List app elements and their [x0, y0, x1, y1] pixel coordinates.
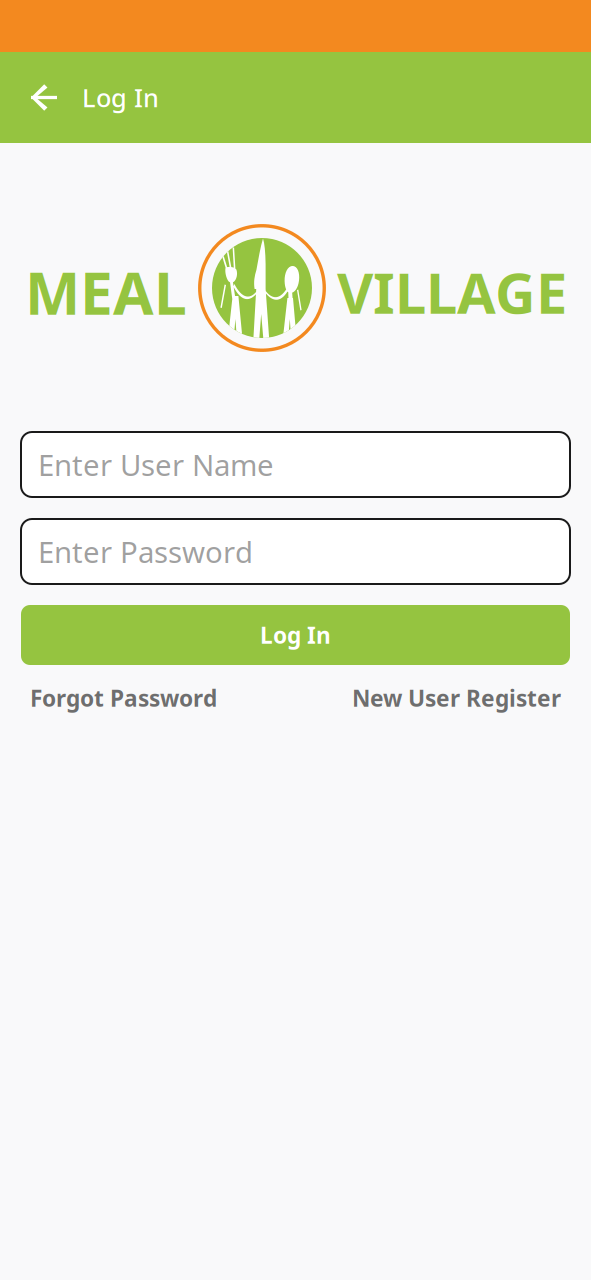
button[interactable]: New User Register	[352, 683, 561, 713]
button[interactable]: Log In	[21, 605, 570, 665]
button[interactable]: Back	[18, 67, 70, 127]
button[interactable]: Enter Password	[21, 519, 570, 584]
staticText: MEAL	[25, 253, 187, 331]
staticText: New User Register	[352, 683, 561, 713]
button[interactable]: Enter User Name	[21, 432, 570, 497]
staticText: Forgot Password	[30, 683, 217, 713]
staticText: Enter Password	[38, 532, 253, 571]
staticText: Log In	[82, 81, 159, 114]
button[interactable]: Forgot Password	[30, 683, 217, 713]
staticText: VILLAGE	[337, 255, 567, 329]
staticText: Log In	[260, 620, 331, 650]
staticText: Enter User Name	[38, 445, 274, 484]
